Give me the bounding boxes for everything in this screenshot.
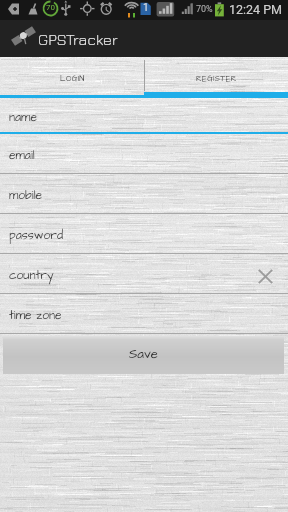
- staticText: time zone: [9, 307, 62, 324]
- button[interactable]: REGISTER: [144, 57, 288, 92]
- staticText: LOGIN: [60, 73, 85, 84]
- staticText: 70%: [196, 4, 213, 15]
- button[interactable]: name: [0, 98, 288, 134]
- other: Clear: [258, 269, 273, 284]
- staticText: 12:24 PM: [229, 2, 283, 17]
- button[interactable]: Save: [3, 336, 284, 374]
- staticText: country: [9, 267, 54, 284]
- staticText: GPSTracker: [38, 30, 118, 48]
- staticText: Save: [129, 345, 158, 363]
- button[interactable]: time zone: [0, 294, 288, 334]
- staticText: email: [9, 147, 35, 164]
- staticText: 70: [46, 3, 55, 12]
- button[interactable]: LOGIN: [0, 57, 144, 92]
- button[interactable]: mobile: [0, 174, 288, 214]
- staticText: name: [9, 109, 37, 126]
- button[interactable]: email: [0, 134, 288, 174]
- staticText: 1: [143, 2, 149, 14]
- button[interactable]: country: [0, 254, 288, 294]
- staticText: mobile: [9, 187, 43, 204]
- staticText: password: [9, 227, 64, 244]
- staticText: REGISTER: [196, 73, 237, 84]
- button[interactable]: password: [0, 214, 288, 254]
